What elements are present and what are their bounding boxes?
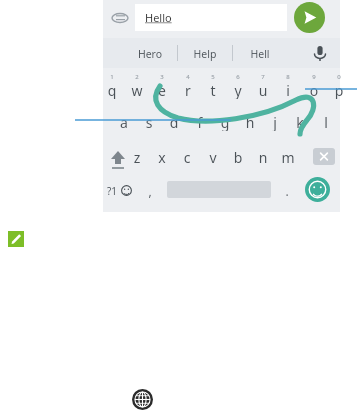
staticText: k [288,113,312,131]
staticText: v [201,148,225,166]
button[interactable]: k [288,108,312,138]
button[interactable]: 8 [276,72,300,105]
button[interactable]: h [238,108,262,138]
button[interactable]: 5 [201,72,225,105]
staticText: m [276,148,300,166]
staticText: u [251,81,275,99]
staticText: j [263,113,287,131]
button[interactable]: Attach file [110,8,130,28]
button[interactable]: b [226,143,250,173]
button[interactable]: n [251,143,275,173]
staticText: 9 [302,73,326,82]
button[interactable]: s [137,108,161,138]
button[interactable]: Symbols [106,177,140,203]
button[interactable]: Change language [132,389,153,410]
staticText: Hello [145,10,172,25]
button[interactable]: 9 [302,72,326,105]
staticText: d [162,113,186,131]
button[interactable]: z [125,143,149,173]
staticText: c [175,148,199,166]
button[interactable]: Shift [106,143,130,173]
button[interactable]: 7 [251,72,275,105]
staticText: l [314,113,338,131]
button[interactable]: 3 [150,72,174,105]
button[interactable]: 1 [100,72,124,105]
staticText: z [125,148,149,166]
staticText: 3 [150,73,174,82]
staticText: 8 [276,73,300,82]
staticText: Help [181,47,229,61]
staticText: a [112,113,136,131]
staticText: 5 [201,73,225,82]
button[interactable]: Voice input [310,43,330,63]
button[interactable]: c [175,143,199,173]
button[interactable]: m [276,143,300,173]
button[interactable]: v [201,143,225,173]
staticText: p [327,81,351,99]
button[interactable]: . [277,177,297,203]
button[interactable]: Hell [236,38,284,68]
staticText: r [176,81,200,99]
staticText: g [213,113,237,131]
staticText: t [201,81,225,99]
button[interactable]: 0 [327,72,351,105]
staticText: y [226,81,250,99]
staticText: Hero [126,47,174,61]
staticText: f [188,113,212,131]
staticText: o [302,81,326,99]
staticText: e [150,81,174,99]
button[interactable]: Hero [126,38,174,68]
button[interactable]: Hello [135,4,287,31]
staticText: 7 [251,73,275,82]
staticText: 0 [327,73,351,82]
button[interactable]: Send [294,2,325,33]
button[interactable]: 4 [176,72,200,105]
button[interactable]: g [213,108,237,138]
button[interactable]: d [162,108,186,138]
staticText: x [150,148,174,166]
button[interactable]: 2 [125,72,149,105]
staticText: n [251,148,275,166]
staticText: ?1 [107,184,118,198]
staticText: 4 [176,73,200,82]
staticText: Hell [236,47,284,61]
staticText: q [100,81,124,99]
staticText: , [140,183,160,199]
button[interactable]: Help [181,38,229,68]
staticText: h [238,113,262,131]
staticText: . [277,183,297,199]
button[interactable]: Backspace [313,148,335,165]
button[interactable]: 6 [226,72,250,105]
button[interactable]: f [188,108,212,138]
staticText: w [125,81,149,99]
button[interactable]: Emoji [305,177,330,202]
staticText: 2 [125,73,149,82]
button[interactable]: j [263,108,287,138]
staticText: i [276,81,300,99]
staticText: 6 [226,73,250,82]
staticText: b [226,148,250,166]
staticText: 1 [100,73,124,82]
button[interactable]: , [140,177,160,203]
button[interactable]: Edit [8,231,24,247]
button[interactable]: a [112,108,136,138]
staticText: s [137,113,161,131]
button[interactable]: x [150,143,174,173]
button[interactable]: l [314,108,338,138]
